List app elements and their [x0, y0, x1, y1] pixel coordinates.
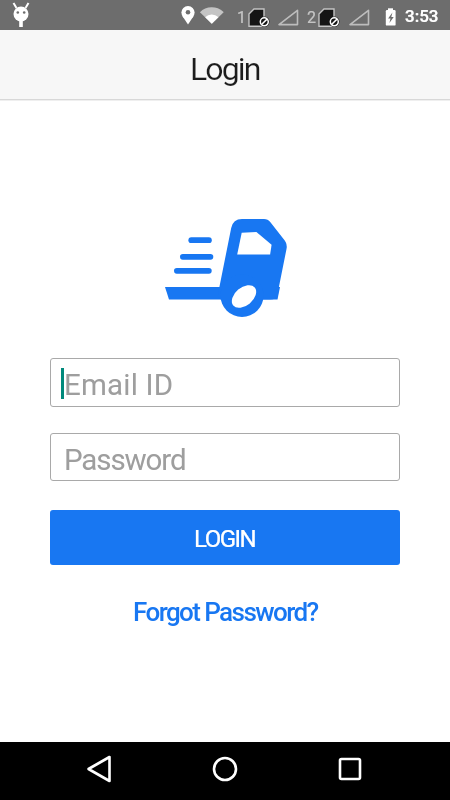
button[interactable]: [78, 750, 120, 792]
staticText: 2: [307, 8, 316, 27]
staticText: Password: [64, 443, 186, 478]
staticText: Email ID: [64, 368, 174, 403]
button[interactable]: [329, 750, 371, 792]
staticText: Login: [190, 50, 260, 88]
button[interactable]: Password: [50, 433, 400, 481]
staticText: 3:53: [405, 6, 439, 26]
button[interactable]: [204, 750, 246, 792]
button[interactable]: Forgot Password?: [133, 597, 318, 627]
button[interactable]: LOGIN: [50, 510, 400, 565]
staticText: LOGIN: [194, 525, 256, 553]
button[interactable]: Email ID: [50, 358, 400, 407]
staticText: 1: [237, 8, 246, 27]
